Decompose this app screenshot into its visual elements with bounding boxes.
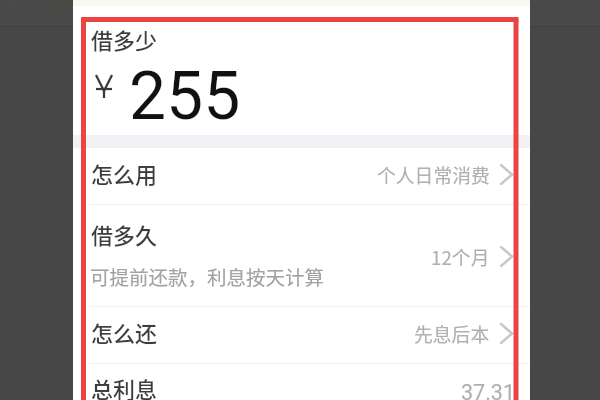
staticText: 12个月 bbox=[431, 243, 490, 270]
staticText: 255 bbox=[129, 58, 241, 135]
staticText: 怎么用 bbox=[91, 157, 158, 189]
staticText: 个人日常消费 bbox=[377, 161, 490, 188]
staticText: 怎么还 bbox=[91, 316, 158, 348]
staticText: 先息后本 bbox=[414, 320, 490, 347]
button[interactable]: 借多久 bbox=[73, 205, 530, 306]
staticText: 37.31 bbox=[461, 380, 516, 400]
staticText: 总利息 bbox=[91, 372, 158, 400]
button[interactable]: 怎么还 bbox=[73, 307, 530, 363]
button[interactable]: 怎么用 bbox=[73, 148, 530, 204]
button[interactable]: 总利息 bbox=[73, 364, 530, 400]
staticText: 借多少 bbox=[91, 23, 158, 55]
staticText: 消江态识 bbox=[1, 0, 85, 15]
staticText: 借多久 bbox=[91, 218, 158, 250]
staticText: 可提前还款，利息按天计算 bbox=[90, 262, 325, 290]
